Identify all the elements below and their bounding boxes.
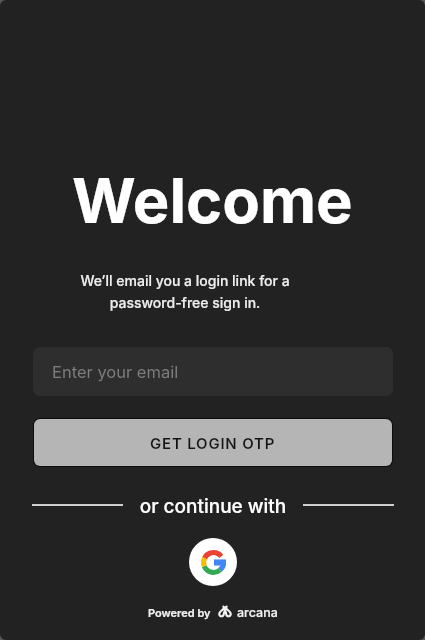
button[interactable]: Enter your email xyxy=(33,347,393,396)
staticText: GET LOGIN OTP xyxy=(150,434,276,452)
button[interactable]: GET LOGIN OTP xyxy=(34,419,392,466)
staticText: Enter your email xyxy=(52,362,179,382)
staticText: arcana xyxy=(237,605,278,620)
staticText: or continue with xyxy=(123,495,303,518)
button[interactable]: Continue with Google xyxy=(189,538,237,586)
staticText: Welcome xyxy=(72,163,353,237)
staticText: Powered by xyxy=(148,606,211,619)
staticText: We’ll email you a login link for a passw… xyxy=(80,272,290,311)
